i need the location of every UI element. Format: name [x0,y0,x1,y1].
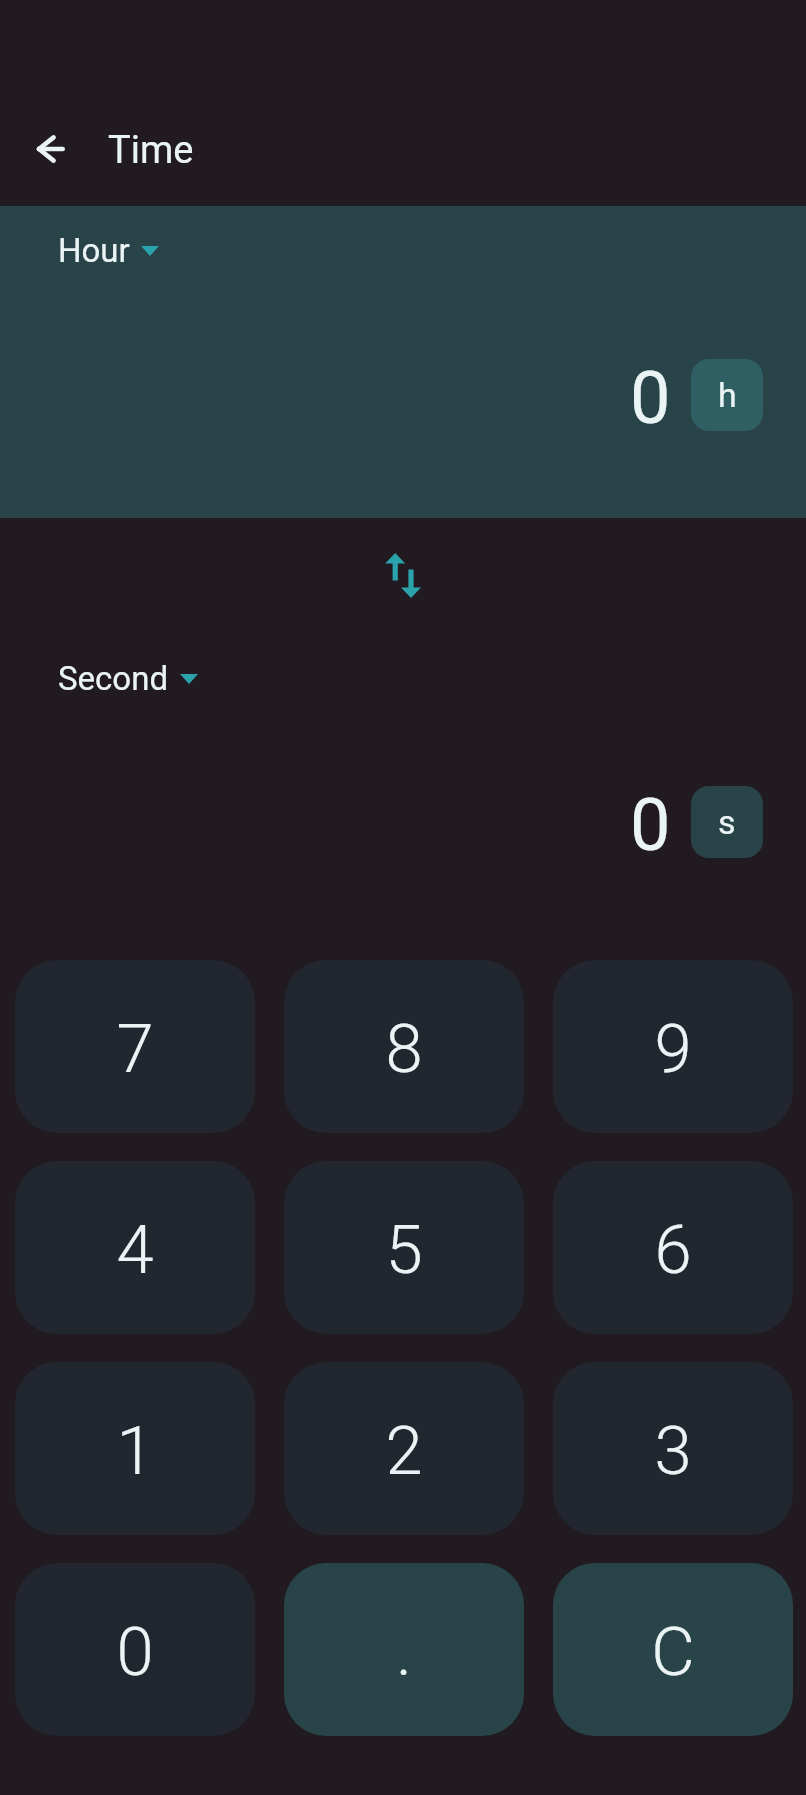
button[interactable]: Choose unit [44,225,169,276]
button[interactable]: 1 [15,1362,255,1535]
button[interactable]: 2 [284,1362,524,1535]
button[interactable]: 9 [553,960,793,1133]
staticText: 9 [654,1010,692,1089]
button[interactable]: Back [0,101,98,199]
button[interactable]: C [553,1563,793,1736]
button[interactable]: h [691,359,763,431]
button[interactable]: Swap units [367,539,439,611]
staticText: 4 [116,1211,154,1290]
staticText: 0 [630,356,671,440]
staticText: s [718,802,736,842]
staticText: h [718,375,737,415]
staticText: 3 [654,1412,692,1491]
button[interactable]: 3 [553,1362,793,1535]
button[interactable]: 7 [15,960,255,1133]
staticText: 2 [385,1412,423,1491]
button[interactable]: 5 [284,1161,524,1334]
button[interactable]: s [691,786,763,858]
button[interactable]: 4 [15,1161,255,1334]
staticText: C [651,1613,695,1692]
staticText: 0 [116,1613,154,1692]
staticText: Hour [58,231,130,270]
button[interactable]: 8 [284,960,524,1133]
staticText: Time [108,128,194,173]
staticText: 6 [654,1211,692,1290]
button[interactable]: . [284,1563,524,1736]
staticText: 7 [116,1010,154,1089]
button[interactable]: Choose unit [44,653,208,704]
staticText: 0 [630,783,671,867]
staticText: 8 [385,1010,423,1089]
staticText: Second [58,659,169,698]
staticText: . [396,1613,412,1692]
button[interactable]: 0 [15,1563,255,1736]
button[interactable]: 6 [553,1161,793,1334]
staticText: 5 [385,1211,423,1290]
staticText: 1 [116,1412,154,1491]
